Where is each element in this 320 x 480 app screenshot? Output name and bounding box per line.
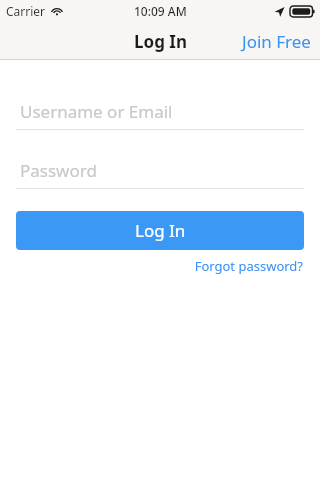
staticText: 10:09 AM [134,3,187,19]
staticText: Carrier [6,3,46,19]
staticText: Log In [135,219,186,242]
staticText: Forgot password? [194,257,303,275]
button[interactable]: Forgot password? [193,254,304,278]
staticText: Password [20,159,97,182]
button[interactable]: Username or Email [16,98,304,130]
staticText: Join Free [242,30,311,53]
button[interactable]: Password [16,157,304,189]
button[interactable]: Log In [16,211,304,250]
button[interactable]: Join Free [233,24,320,59]
staticText: Log In [134,30,187,53]
staticText: Username or Email [20,100,173,123]
